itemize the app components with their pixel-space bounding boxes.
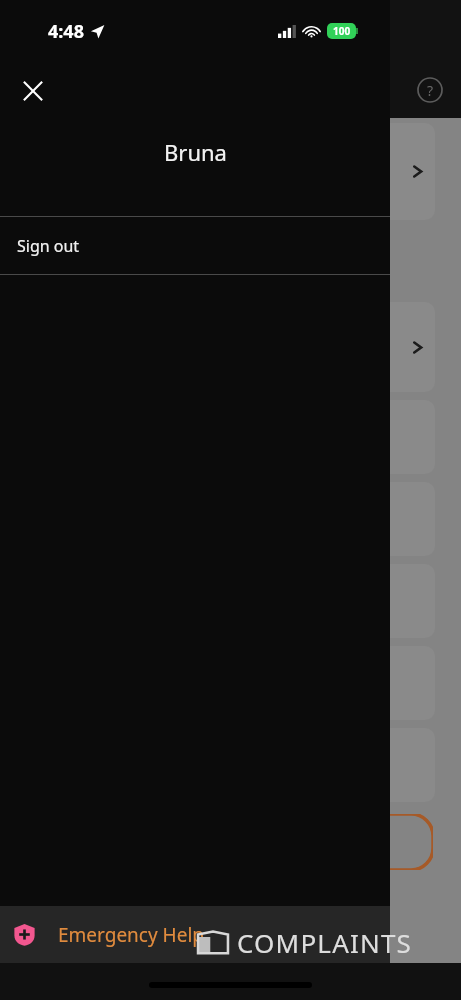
button[interactable]: [16, 646, 435, 720]
button[interactable]: Close: [10, 68, 56, 114]
button[interactable]: 3/3: [16, 302, 435, 392]
button[interactable]: [16, 400, 435, 474]
button[interactable]: 3/3: [16, 564, 435, 638]
button[interactable]: Emergency Help: [0, 906, 390, 963]
staticText: 4:48: [48, 19, 84, 44]
staticText: COMPLAINTS: [237, 925, 413, 960]
staticText: 100: [333, 24, 351, 38]
button[interactable]: [16, 482, 435, 556]
staticText: ?: [427, 81, 434, 100]
staticText: Bruna: [164, 137, 227, 167]
button[interactable]: [18, 814, 433, 870]
button[interactable]: [16, 123, 435, 220]
button[interactable]: [16, 728, 435, 802]
button[interactable]: Help: [411, 71, 449, 109]
button[interactable]: Sign out: [0, 217, 390, 274]
staticText: Emergency Help: [58, 922, 204, 948]
staticText: Sign out: [17, 235, 80, 257]
